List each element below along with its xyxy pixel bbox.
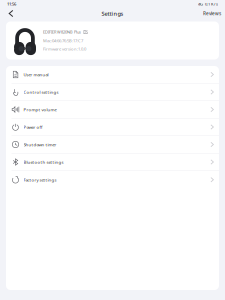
staticText: Settings (101, 10, 123, 17)
staticText: Control settings (23, 89, 58, 95)
staticText: Mac:04:66:76:5B:17:C7 (43, 38, 83, 43)
button[interactable]: Shutdown timer (6, 136, 219, 153)
staticText: Firmware version:1.0.0 (43, 46, 86, 52)
button[interactable]: Reviews (203, 8, 221, 19)
staticText: Power off (23, 124, 42, 130)
button[interactable]: Control settings (6, 83, 219, 101)
button[interactable]: Prompt volume (6, 101, 219, 118)
staticText: Factory settings (23, 177, 56, 183)
button[interactable]: Bluetooth settings (6, 153, 219, 171)
staticText: User manual (23, 72, 48, 77)
staticText: 4G 0.1 K/s (198, 1, 218, 7)
staticText: 11:56 (7, 1, 16, 7)
staticText: Shutdown timer (23, 142, 56, 147)
staticText: Bluetooth settings (23, 159, 63, 165)
button[interactable]: Back (4, 8, 18, 19)
staticText: EDIFIER W820NB Plus (43, 29, 81, 35)
button[interactable]: Power off (6, 118, 219, 136)
button[interactable]: EDIFIER W820NB Plus (6, 21, 219, 59)
button[interactable]: Factory settings (6, 171, 219, 188)
staticText: Prompt volume (23, 107, 56, 112)
button[interactable]: User manual (6, 66, 219, 83)
staticText: Reviews (203, 10, 221, 17)
